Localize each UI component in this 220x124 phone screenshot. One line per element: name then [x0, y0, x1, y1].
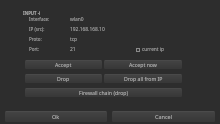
staticText: 21 [70, 46, 76, 53]
staticText: wlan0 [70, 16, 84, 23]
button[interactable]: current ip [136, 46, 164, 53]
staticText: Proto: [29, 36, 42, 42]
staticText: 192.168.168.10 [70, 26, 105, 33]
button[interactable]: Accept now [104, 60, 182, 69]
button[interactable]: Ok [5, 111, 107, 122]
staticText: Port: [29, 46, 40, 52]
button[interactable]: Drop all from IP [104, 74, 182, 83]
staticText: current ip [142, 46, 164, 53]
staticText: Cancel [155, 113, 173, 120]
staticText: Accept now [129, 61, 157, 68]
button[interactable]: Drop [25, 74, 102, 83]
staticText: IP (src): [29, 26, 45, 32]
staticText: Interface: [29, 16, 50, 22]
staticText: Accept [55, 61, 72, 68]
staticText: INPUT -i [23, 10, 41, 16]
button[interactable]: Firewall chain (drop) [25, 88, 182, 97]
staticText: Drop [57, 75, 70, 82]
staticText: Drop all from IP [124, 75, 163, 82]
button[interactable]: Accept [25, 60, 102, 69]
staticText: Firewall chain (drop) [79, 89, 129, 96]
staticText: Ok [52, 113, 60, 120]
staticText: tcp [70, 36, 78, 43]
button[interactable]: Cancel [112, 111, 215, 122]
